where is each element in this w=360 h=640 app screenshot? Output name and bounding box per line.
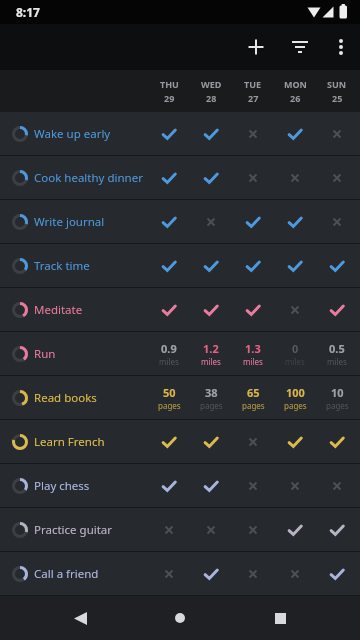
button[interactable]: 38 [190, 376, 232, 420]
staticText: Meditate [34, 302, 83, 318]
staticText: 27 [248, 92, 259, 104]
button[interactable] [316, 200, 358, 244]
button[interactable] [322, 24, 360, 70]
staticText: Wake up early [34, 126, 111, 142]
button[interactable]: Call a friend [0, 552, 360, 596]
button[interactable]: Practice guitar [0, 508, 360, 552]
button[interactable] [190, 464, 232, 508]
button[interactable] [316, 552, 358, 596]
button[interactable] [232, 244, 274, 288]
button[interactable] [274, 288, 316, 332]
button[interactable] [316, 464, 358, 508]
button[interactable] [274, 244, 316, 288]
button[interactable]: 65 [232, 376, 274, 420]
button[interactable] [316, 156, 358, 200]
button[interactable]: Learn French [0, 420, 360, 464]
button[interactable] [148, 552, 190, 596]
button[interactable] [148, 420, 190, 464]
button[interactable] [232, 288, 274, 332]
button[interactable] [190, 508, 232, 552]
button[interactable] [190, 288, 232, 332]
button[interactable] [316, 508, 358, 552]
button[interactable] [190, 244, 232, 288]
button[interactable] [144, 596, 216, 640]
button[interactable] [232, 200, 274, 244]
button[interactable] [44, 596, 116, 640]
button[interactable] [148, 244, 190, 288]
button[interactable] [274, 200, 316, 244]
button[interactable]: Meditate [0, 288, 360, 332]
button[interactable]: 1.2 [190, 332, 232, 376]
staticText: TUE [244, 78, 262, 90]
button[interactable]: Wake up early [0, 112, 360, 156]
staticText: 0 [292, 341, 299, 356]
button[interactable]: 1.3 [232, 332, 274, 376]
staticText: Read books [34, 390, 97, 406]
staticText: pages [284, 400, 307, 411]
button[interactable]: Cook healthy dinner [0, 156, 360, 200]
button[interactable] [274, 508, 316, 552]
staticText: MON [284, 78, 307, 90]
button[interactable] [232, 156, 274, 200]
button[interactable]: 50 [148, 376, 190, 420]
staticText: Run [34, 346, 56, 362]
button[interactable] [148, 112, 190, 156]
button[interactable]: Play chess [0, 464, 360, 508]
staticText: Track time [34, 258, 90, 274]
button[interactable] [148, 508, 190, 552]
staticText: pages [200, 400, 223, 411]
button[interactable]: 0.9 [148, 332, 190, 376]
button[interactable] [232, 552, 274, 596]
staticText: 10 [331, 385, 344, 400]
button[interactable] [278, 24, 322, 70]
button[interactable] [232, 508, 274, 552]
staticText: Practice guitar [34, 522, 113, 538]
staticText: Cook healthy dinner [34, 170, 143, 186]
button[interactable]: 10 [316, 376, 358, 420]
staticText: miles [159, 356, 179, 367]
button[interactable] [190, 200, 232, 244]
staticText: miles [285, 356, 305, 367]
button[interactable] [274, 420, 316, 464]
staticText: SUN [327, 78, 347, 90]
button[interactable] [234, 24, 278, 70]
button[interactable]: Track time [0, 244, 360, 288]
button[interactable]: Write journal [0, 200, 360, 244]
button[interactable]: 0.5 [316, 332, 358, 376]
staticText: 65 [247, 385, 260, 400]
button[interactable]: 100 [274, 376, 316, 420]
button[interactable] [232, 464, 274, 508]
staticText: 8:17 [16, 4, 40, 20]
button[interactable] [190, 156, 232, 200]
button[interactable] [148, 464, 190, 508]
staticText: 28 [206, 92, 217, 104]
staticText: THU [160, 78, 179, 90]
staticText: 1.3 [245, 341, 261, 356]
button[interactable] [232, 112, 274, 156]
button[interactable] [190, 552, 232, 596]
button[interactable] [148, 156, 190, 200]
button[interactable] [316, 112, 358, 156]
button[interactable] [316, 288, 358, 332]
staticText: 26 [290, 92, 301, 104]
button[interactable] [190, 420, 232, 464]
button[interactable]: 0 [274, 332, 316, 376]
button[interactable] [274, 112, 316, 156]
button[interactable] [274, 156, 316, 200]
button[interactable] [232, 420, 274, 464]
button[interactable] [190, 112, 232, 156]
staticText: Play chess [34, 478, 90, 494]
button[interactable] [148, 288, 190, 332]
button[interactable] [244, 596, 316, 640]
button[interactable] [316, 420, 358, 464]
staticText: Write journal [34, 214, 105, 230]
button[interactable]: Run [0, 332, 360, 376]
button[interactable]: Read books [0, 376, 360, 420]
button[interactable] [148, 200, 190, 244]
button[interactable] [316, 244, 358, 288]
button[interactable] [274, 464, 316, 508]
staticText: 100 [286, 385, 305, 400]
staticText: 25 [332, 92, 343, 104]
button[interactable] [274, 552, 316, 596]
staticText: miles [201, 356, 221, 367]
